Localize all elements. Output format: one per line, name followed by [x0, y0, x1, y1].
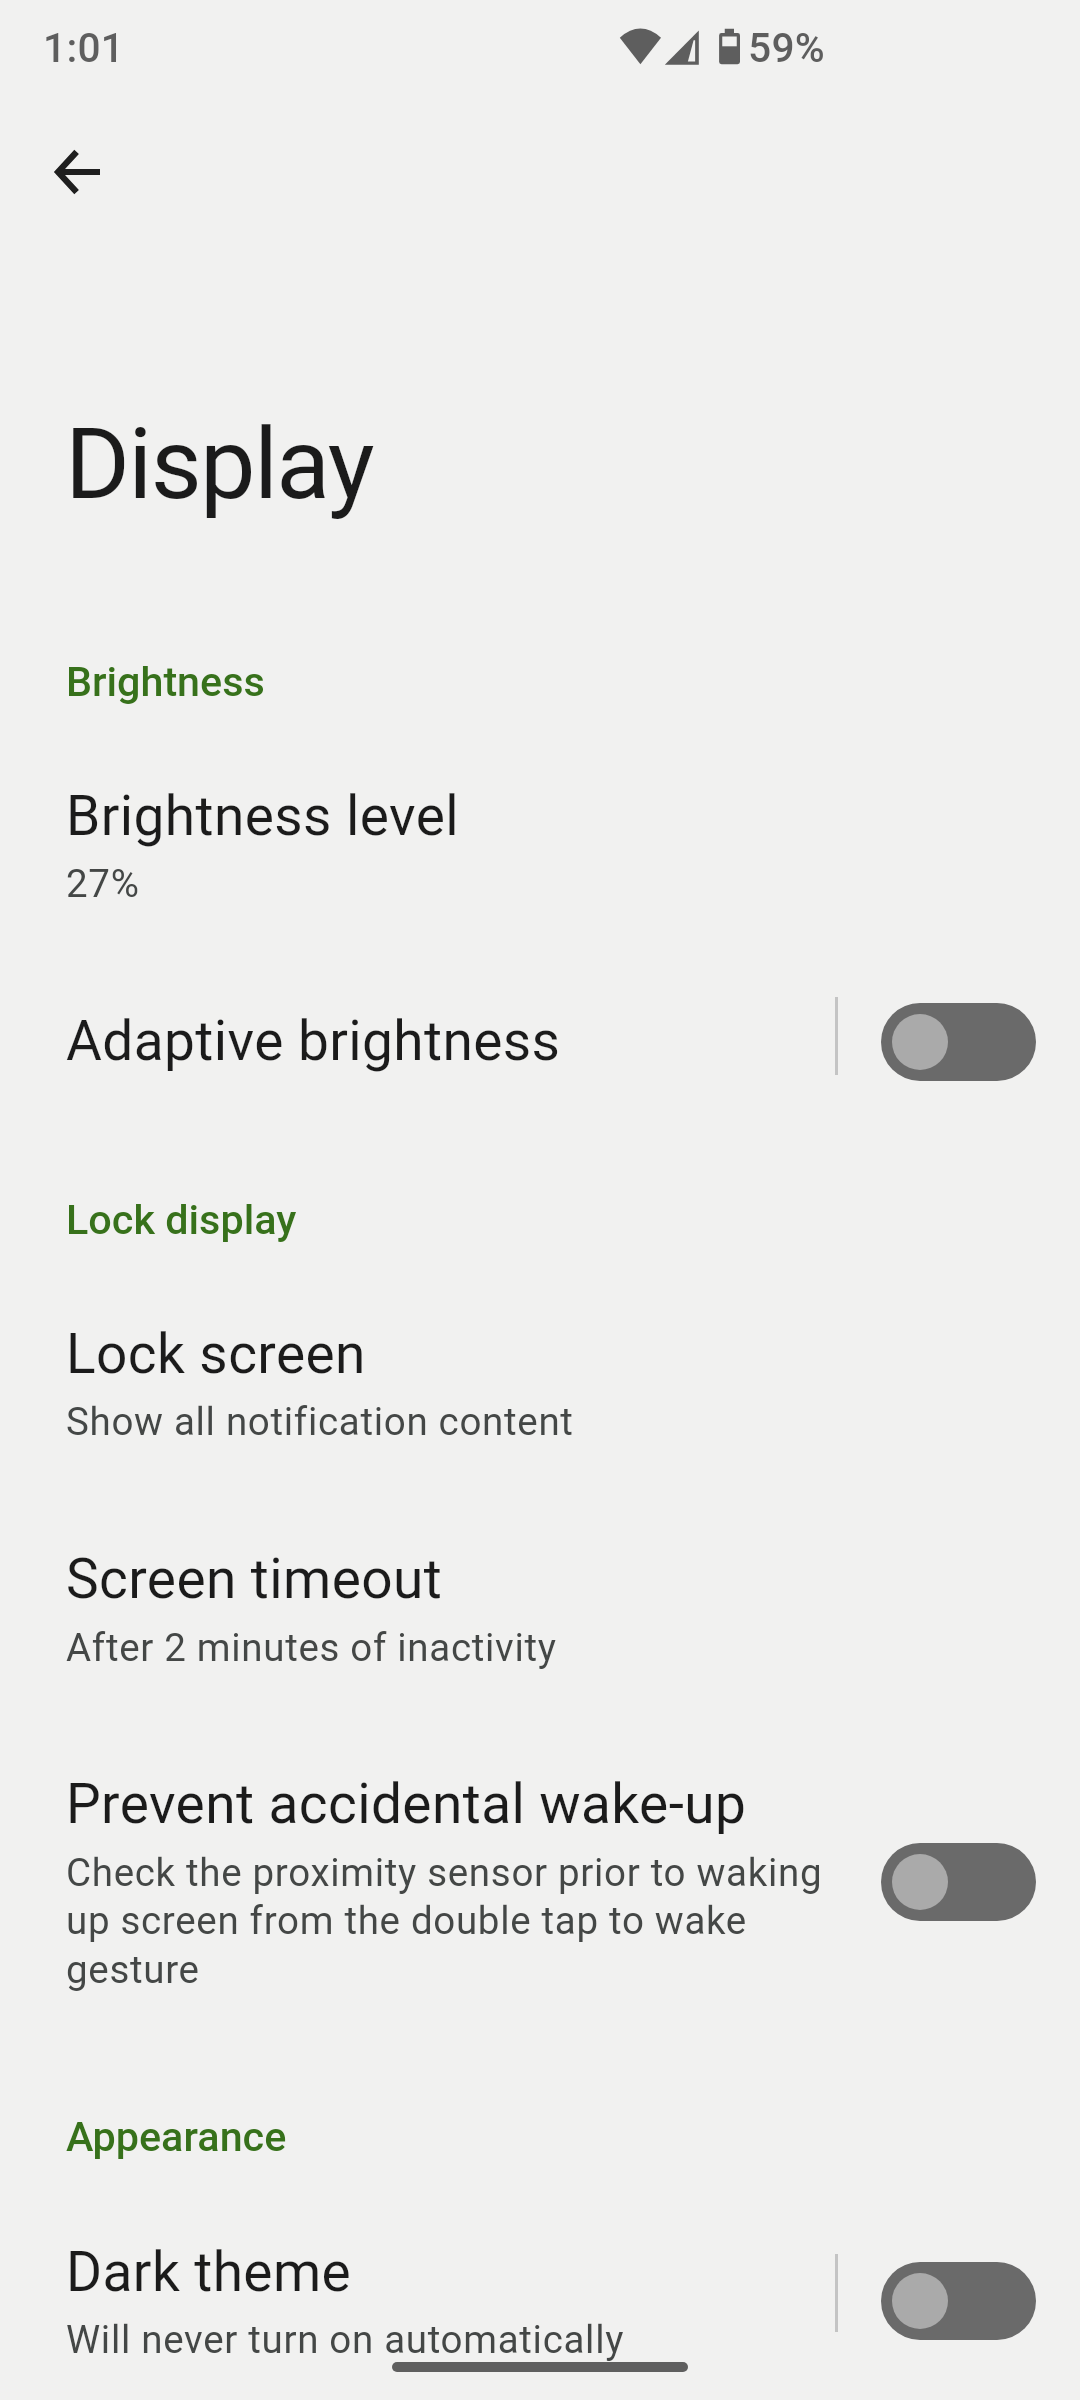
- button[interactable]: [0, 742, 1080, 918]
- staticText: Lock screen: [66, 1322, 366, 1386]
- staticText: Lock display: [66, 1196, 297, 1244]
- button[interactable]: Prevent accidental wake-up switch, off: [881, 1843, 1036, 1921]
- button[interactable]: [0, 1285, 1080, 1455]
- staticText: Display: [65, 406, 373, 522]
- staticText: Will never turn on automatically: [66, 2317, 625, 2362]
- staticText: 27%: [66, 861, 140, 906]
- staticText: 1:01: [43, 24, 125, 72]
- button[interactable]: Dark theme switch, off: [881, 2262, 1036, 2340]
- staticText: 59%: [748, 24, 825, 72]
- staticText: Adaptive brightness: [66, 1009, 561, 1073]
- staticText: Dark theme: [66, 2240, 352, 2304]
- staticText: Appearance: [66, 2113, 287, 2161]
- staticText: Brightness: [66, 658, 265, 706]
- button[interactable]: [0, 960, 1080, 1120]
- staticText: Show all notification content: [66, 1399, 574, 1444]
- button[interactable]: Adaptive brightness switch, off: [881, 1003, 1036, 1081]
- button[interactable]: [0, 1735, 1080, 2005]
- staticText: Check the proximity sensor prior to waki…: [66, 1850, 823, 1993]
- staticText: After 2 minutes of inactivity: [66, 1625, 557, 1670]
- staticText: Brightness level: [66, 784, 460, 848]
- button[interactable]: [0, 2200, 1080, 2370]
- staticText: Screen timeout: [66, 1547, 443, 1611]
- button[interactable]: [0, 1510, 1080, 1680]
- button[interactable]: Back: [12, 107, 142, 237]
- staticText: Prevent accidental wake-up: [66, 1772, 747, 1836]
